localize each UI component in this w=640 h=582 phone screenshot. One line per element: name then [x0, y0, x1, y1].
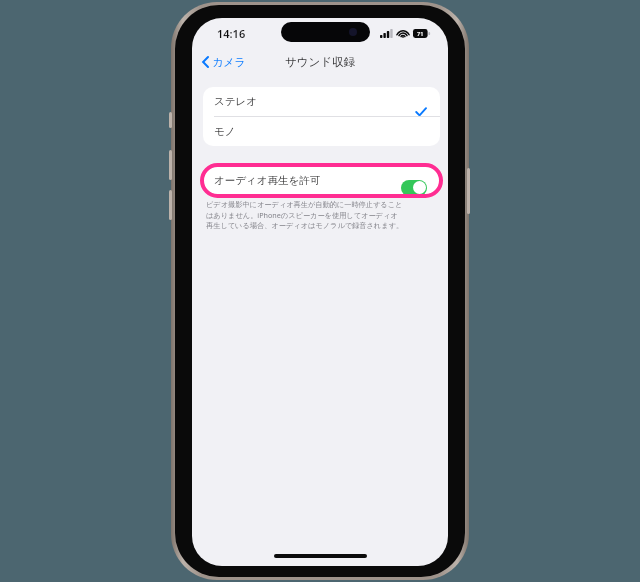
staticText: サウンド収録 — [285, 55, 356, 69]
staticText: 71 — [417, 30, 424, 38]
staticText: ビデオ撮影中にオーディオ再生が自動的に一時停止すること — [206, 200, 403, 209]
staticText: ステレオ — [214, 95, 257, 108]
staticText: はありません。iPhoneのスピーカーを使用してオーディオ — [206, 210, 398, 220]
staticText: カメラ — [212, 55, 246, 69]
staticText: 14:16 — [217, 26, 246, 41]
button[interactable]: カメラ — [198, 51, 250, 73]
button[interactable]: ステレオ — [203, 87, 440, 116]
staticText: モノ — [214, 125, 236, 138]
button[interactable]: オーディオ再生を許可 — [203, 166, 440, 195]
staticText: オーディオ再生を許可 — [214, 174, 321, 187]
button[interactable]: モノ — [203, 117, 440, 146]
staticText: 再生している場合、オーディオはモノラルで録音されます。 — [206, 221, 404, 230]
